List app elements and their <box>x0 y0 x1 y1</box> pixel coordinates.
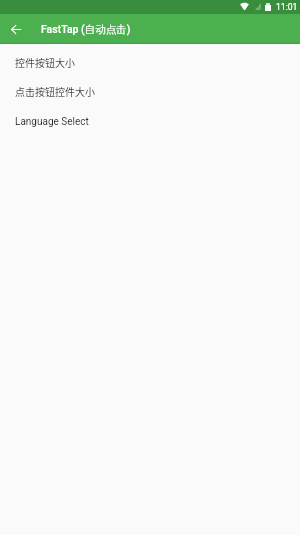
staticText: 点击按钮控件大小 <box>15 84 95 98</box>
button[interactable]: Language Select <box>0 107 300 136</box>
button[interactable]: 控件按钮大小 <box>0 49 300 78</box>
staticText: 控件按钮大小 <box>15 55 75 69</box>
staticText: 11:01 <box>276 2 298 12</box>
staticText: Language Select <box>15 116 89 128</box>
button[interactable]: Back <box>0 14 31 44</box>
button[interactable]: 点击按钮控件大小 <box>0 78 300 107</box>
staticText: FastTap (自动点击) <box>41 23 131 36</box>
